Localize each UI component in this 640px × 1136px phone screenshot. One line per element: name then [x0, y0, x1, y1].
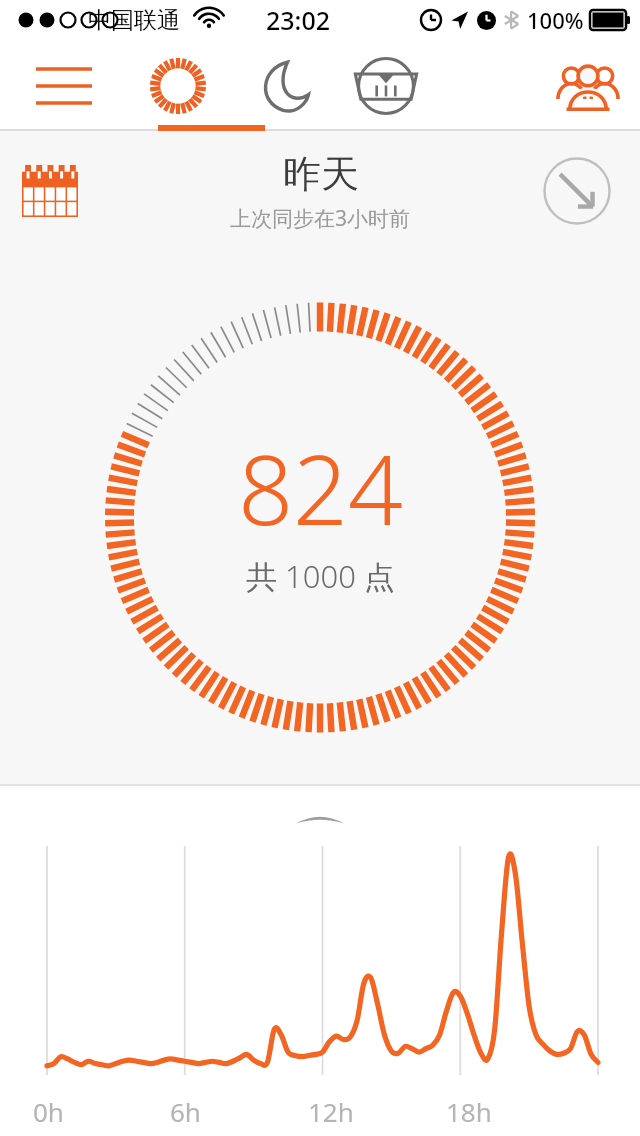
- button[interactable]: Sync: [540, 154, 614, 228]
- staticText: 6h: [170, 1094, 201, 1129]
- staticText: 824: [238, 422, 403, 553]
- staticText: 23:02: [266, 3, 331, 37]
- button[interactable]: Friends: [536, 40, 640, 131]
- staticText: 共 1000 点: [246, 555, 395, 597]
- button[interactable]: Weight: [336, 40, 436, 131]
- staticText: 0h: [33, 1094, 64, 1129]
- staticText: 上次同步在3小时前: [230, 204, 411, 233]
- button[interactable]: Calendar: [14, 155, 86, 227]
- button[interactable]: Activity: [128, 40, 228, 131]
- staticText: 昨天: [283, 150, 359, 198]
- staticText: 100%: [527, 5, 584, 35]
- staticText: 18h: [446, 1094, 492, 1129]
- staticText: 12h: [308, 1094, 354, 1129]
- staticText: 中国联通: [88, 6, 180, 35]
- button[interactable]: Sleep: [228, 40, 336, 131]
- button[interactable]: Menu: [0, 40, 128, 131]
